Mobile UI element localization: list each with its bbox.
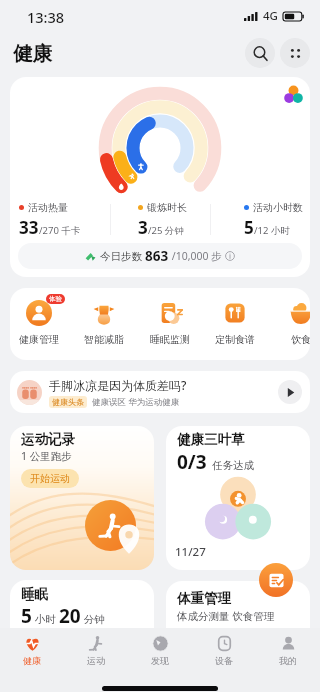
staticText: 锻炼时长 [147,201,187,214]
button[interactable]: Search [245,38,275,68]
button[interactable]: 体验 [10,288,72,360]
staticText: 健康误区 华为运动健康 [92,396,180,408]
staticText: 小时 [32,612,59,626]
button[interactable]: 手脚冰凉是因为体质差吗? [10,371,310,413]
button[interactable]: 今日步数 [18,243,302,269]
button[interactable]: 饮食 [268,288,310,360]
staticText: 健康管理 [19,333,59,346]
staticText: 健康头条 [52,397,84,407]
button[interactable]: 健康三叶草 [166,426,310,570]
button[interactable]: 定制食谱 [202,288,268,360]
staticText: 0/3 [177,449,207,475]
button[interactable]: 设备 [192,628,256,672]
staticText: 设备 [215,655,233,666]
staticText: 运动记录 [21,431,75,448]
button[interactable]: 睡眠监测 [137,288,203,360]
staticText: 13:38 [27,7,65,27]
staticText: /25 分钟 [148,224,184,237]
staticText: 5 [244,216,254,239]
staticText: 3 [138,216,148,239]
staticText: 运动 [87,655,105,666]
button[interactable]: 运动 [64,628,128,672]
button[interactable]: More options [280,38,310,68]
button[interactable]: Record [259,563,293,597]
staticText: 活动小时数 [253,201,303,214]
staticText: 健康三叶草 [177,431,245,448]
staticText: 分钟 [81,612,105,626]
staticText: 4G [263,8,278,24]
staticText: 33 [19,216,39,239]
button[interactable]: Play article [278,380,302,404]
button[interactable]: 我的 [256,628,320,672]
staticText: /10,000 步 [169,249,225,263]
button[interactable]: 发现 [128,628,192,672]
staticText: 我的 [279,655,297,666]
button[interactable]: 睡眠 [10,580,154,650]
button[interactable]: Health app logo [276,77,310,111]
staticText: 1 公里跑步 [21,449,72,463]
staticText: /270 千卡 [39,224,81,237]
staticText: 手脚冰凉是因为体质差吗? [49,377,187,393]
staticText: 任务达成 [212,459,254,472]
staticText: 体重管理 [177,590,231,607]
staticText: 饮食 [291,333,310,346]
staticText: 5 [21,603,32,629]
staticText: 体验 [49,295,62,303]
staticText: 健康 [13,41,52,66]
staticText: 智能减脂 [84,333,124,346]
staticText: 健康 [23,655,41,666]
staticText: 20 [59,603,81,629]
staticText: 发现 [151,655,169,666]
staticText: /12 小时 [254,224,290,237]
staticText: 体成分测量 饮食管理 [177,609,275,623]
staticText: 活动热量 [28,201,68,214]
button[interactable]: 活动热量 [10,77,310,277]
button[interactable]: 体重管理 [166,581,310,650]
staticText: 定制食谱 [215,333,255,346]
button[interactable]: 智能减脂 [71,288,137,360]
staticText: 睡眠 [21,586,48,603]
staticText: 开始运动 [30,472,70,485]
button[interactable]: 开始运动 [21,469,79,488]
staticText: 睡眠监测 [150,333,190,346]
staticText: 863 [145,247,169,265]
button[interactable]: 健康 [0,628,64,672]
staticText: 11/27 [175,544,206,560]
button[interactable]: 运动记录 [10,426,154,570]
staticText: 今日步数 [100,249,145,263]
